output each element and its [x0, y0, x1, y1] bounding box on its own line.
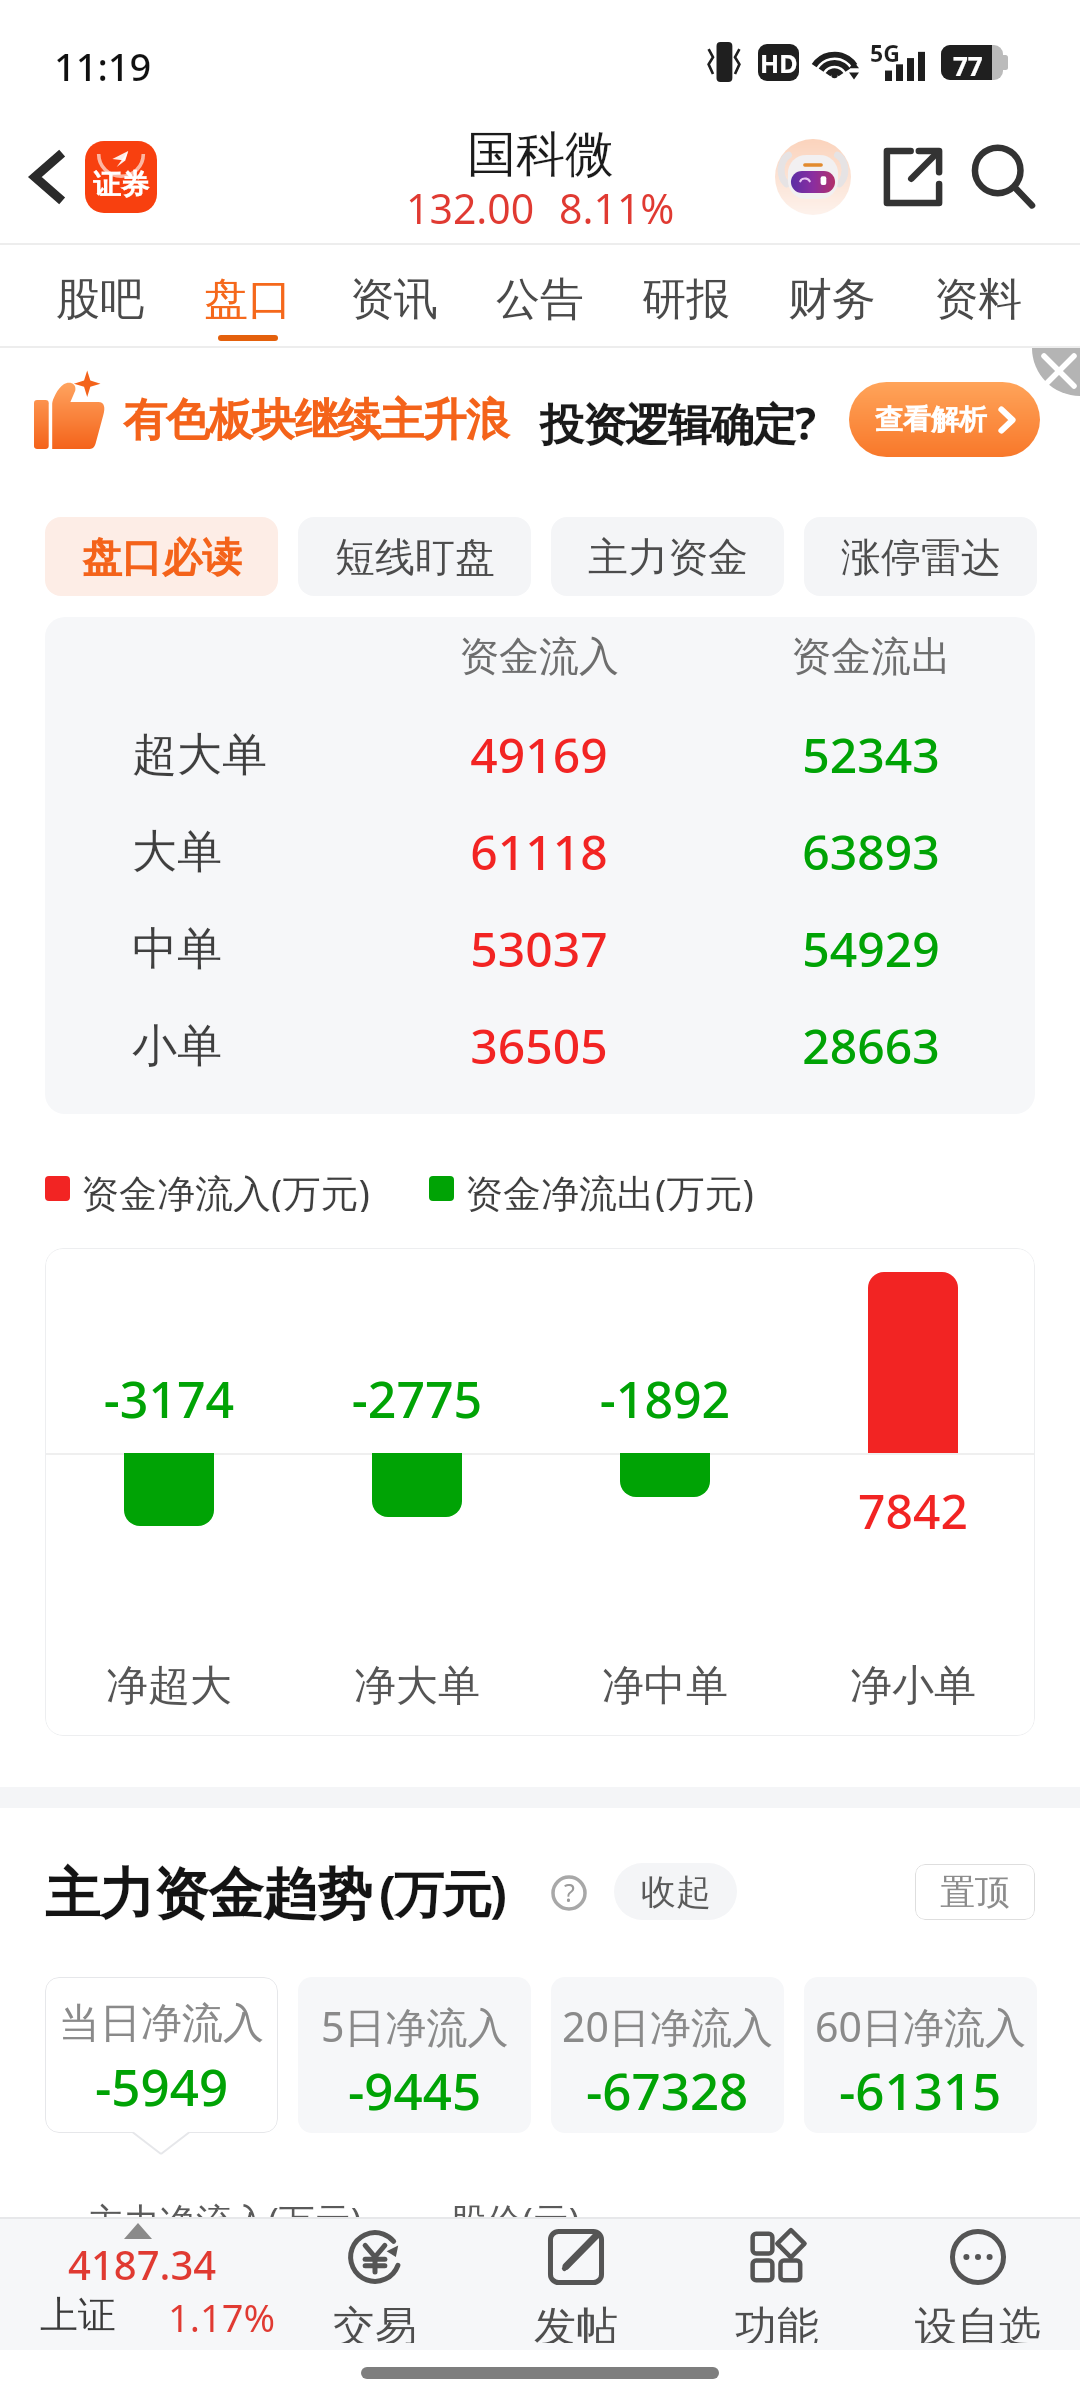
- button[interactable]: Share: [872, 136, 954, 218]
- staticText: 54929: [751, 916, 991, 981]
- staticText: 主力净流入(万元): [88, 2196, 362, 2236]
- button[interactable]: 当日净流入: [45, 1977, 278, 2133]
- button[interactable]: 20日净流入: [551, 1977, 784, 2133]
- staticText: 大单: [132, 824, 222, 881]
- staticText: 1.17%: [168, 2291, 275, 2343]
- staticText: 52343: [751, 722, 991, 787]
- staticText: 5G: [870, 37, 900, 68]
- staticText: 77: [953, 48, 983, 83]
- staticText: 63893: [751, 819, 991, 884]
- button[interactable]: 收起: [614, 1863, 737, 1920]
- button[interactable]: 资讯: [322, 247, 466, 345]
- button[interactable]: 设自选: [883, 2223, 1073, 2343]
- staticText: 设自选: [915, 2301, 1041, 2343]
- staticText: 投资逻辑确定?: [540, 393, 815, 453]
- staticText: 20日净流入: [562, 1998, 773, 2054]
- staticText: 股价(元): [450, 2196, 580, 2236]
- button[interactable]: 研报: [614, 247, 758, 345]
- staticText: 置顶: [940, 1870, 1010, 1914]
- button[interactable]: 功能: [682, 2223, 872, 2343]
- staticText: 盘口: [204, 272, 292, 327]
- button[interactable]: 公告: [468, 247, 612, 345]
- button[interactable]: Help: [551, 1875, 587, 1911]
- staticText: 净超大: [49, 1660, 289, 1713]
- button[interactable]: 股吧: [28, 247, 172, 345]
- button[interactable]: 5日净流入: [298, 1977, 531, 2133]
- staticText: 短线盯盘: [335, 532, 495, 582]
- staticText: 36505: [419, 1013, 659, 1078]
- staticText: 净中单: [545, 1660, 785, 1713]
- staticText: -5949: [95, 2051, 229, 2120]
- staticText: 小单: [132, 1018, 222, 1075]
- staticText: -3174: [49, 1365, 289, 1433]
- staticText: 主力资金: [588, 532, 748, 582]
- button[interactable]: 60日净流入: [804, 1977, 1037, 2133]
- staticText: 7842: [793, 1478, 1033, 1543]
- staticText: 功能: [735, 2301, 819, 2343]
- button[interactable]: 资料: [906, 247, 1050, 345]
- button[interactable]: 盘口必读: [45, 517, 278, 596]
- staticText: -9445: [348, 2055, 482, 2124]
- staticText: 盘口必读: [82, 532, 242, 582]
- staticText: 财务: [788, 272, 876, 327]
- staticText: 11:19: [54, 40, 152, 92]
- staticText: 交易: [333, 2301, 417, 2343]
- staticText: 上证: [40, 2291, 116, 2339]
- staticText: 证券: [93, 167, 149, 202]
- staticText: ?: [564, 1875, 575, 1909]
- staticText: 超大单: [132, 727, 267, 784]
- staticText: 中单: [132, 921, 222, 978]
- staticText: 8.11%: [559, 180, 675, 236]
- staticText: 当日净流入: [59, 1998, 264, 2050]
- button[interactable]: 财务: [760, 247, 904, 345]
- staticText: HD: [760, 46, 798, 80]
- staticText: 28663: [751, 1013, 991, 1078]
- staticText: 53037: [419, 916, 659, 981]
- staticText: 发帖: [534, 2301, 618, 2343]
- staticText: 有色板块继续主升浪: [123, 393, 509, 448]
- button[interactable]: Securities home: [85, 141, 157, 213]
- staticText: 股吧: [56, 272, 144, 327]
- button[interactable]: Search: [962, 136, 1044, 218]
- staticText: 49169: [419, 722, 659, 787]
- staticText: -2775: [297, 1365, 537, 1433]
- button[interactable]: 4187.34: [20, 2231, 310, 2343]
- staticText: -1892: [545, 1365, 785, 1433]
- staticText: 主力资金趋势: [45, 1860, 372, 1929]
- button[interactable]: 交易: [280, 2223, 470, 2343]
- button[interactable]: 涨停雷达: [804, 517, 1037, 596]
- staticText: 资金净流出(万元): [465, 1166, 754, 1212]
- staticText: (万元): [379, 1859, 505, 1927]
- button[interactable]: 短线盯盘: [298, 517, 531, 596]
- button[interactable]: 查看解析: [849, 382, 1040, 457]
- button[interactable]: Close banner: [1032, 348, 1080, 396]
- button[interactable]: 发帖: [481, 2223, 671, 2343]
- button[interactable]: 置顶: [915, 1864, 1035, 1920]
- button[interactable]: AI assistant: [772, 136, 854, 218]
- staticText: 资料: [934, 272, 1022, 327]
- staticText: 60日净流入: [815, 1998, 1026, 2054]
- staticText: -61315: [839, 2055, 1002, 2124]
- staticText: 净小单: [793, 1660, 1033, 1713]
- staticText: 资讯: [350, 272, 438, 327]
- button[interactable]: 主力资金: [551, 517, 784, 596]
- staticText: 资金净流入(万元): [81, 1166, 370, 1212]
- staticText: 查看解析: [875, 402, 987, 437]
- staticText: 资金流出: [751, 631, 991, 681]
- staticText: 132.00: [406, 180, 535, 236]
- staticText: 公告: [496, 272, 584, 327]
- staticText: 资金流入: [419, 631, 659, 681]
- button[interactable]: 盘口: [176, 247, 320, 345]
- staticText: 涨停雷达: [841, 532, 1001, 582]
- staticText: 国科微: [467, 124, 614, 186]
- staticText: 收起: [641, 1870, 711, 1914]
- staticText: 净大单: [297, 1660, 537, 1713]
- staticText: 5日净流入: [321, 1998, 509, 2054]
- button[interactable]: Back: [12, 139, 88, 215]
- staticText: 4187.34: [68, 2237, 217, 2291]
- staticText: 61118: [419, 819, 659, 884]
- staticText: -67328: [586, 2055, 749, 2124]
- staticText: 研报: [642, 272, 730, 327]
